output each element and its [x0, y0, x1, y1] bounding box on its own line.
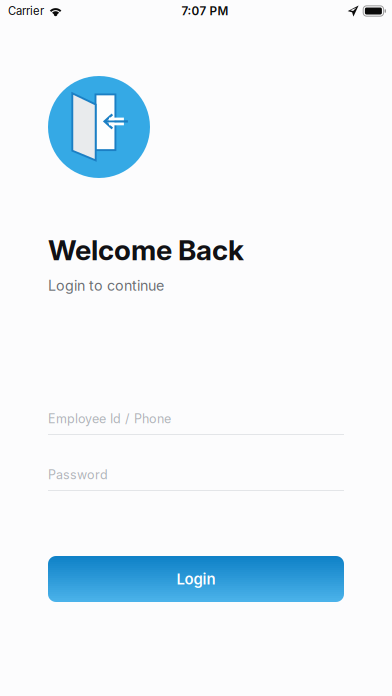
staticText: Welcome Back: [48, 233, 244, 267]
button[interactable]: Login: [48, 556, 344, 602]
button[interactable]: Password: [48, 461, 344, 491]
staticText: Carrier: [8, 4, 44, 18]
staticText: Employee Id / Phone: [48, 411, 171, 426]
staticText: Password: [48, 467, 108, 482]
button[interactable]: Employee Id / Phone: [48, 405, 344, 435]
staticText: Login to continue: [48, 277, 164, 294]
staticText: 7:07 PM: [182, 4, 229, 18]
staticText: Login: [176, 570, 215, 588]
